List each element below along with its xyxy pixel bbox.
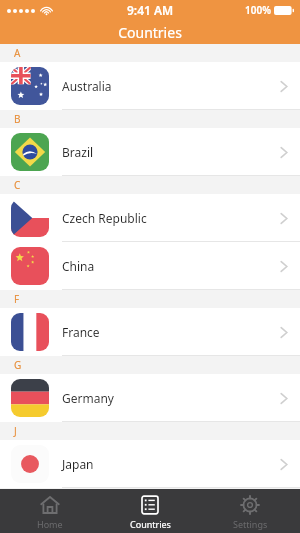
staticText: Brazil: [62, 144, 280, 160]
staticText: J: [14, 424, 17, 438]
staticText: Countries: [118, 23, 182, 42]
other: Countries: [140, 495, 160, 515]
other: Settings: [240, 495, 260, 515]
button[interactable]: France: [0, 308, 300, 356]
staticText: B: [14, 112, 21, 126]
button[interactable]: Countries: [100, 489, 200, 533]
staticText: G: [14, 358, 22, 372]
button[interactable]: Home: [0, 489, 100, 533]
button[interactable]: Australia: [0, 62, 300, 110]
staticText: F: [14, 292, 20, 306]
button[interactable]: Settings: [200, 489, 300, 533]
staticText: Settings: [233, 518, 268, 530]
staticText: 9:41 AM: [127, 2, 174, 18]
staticText: Japan: [62, 456, 280, 472]
staticText: China: [62, 258, 280, 274]
button[interactable]: Czech Republic: [0, 194, 300, 242]
other: Home: [40, 495, 60, 515]
staticText: Czech Republic: [62, 210, 280, 226]
staticText: C: [14, 178, 21, 192]
staticText: 100%: [245, 3, 271, 17]
staticText: A: [14, 46, 21, 60]
button[interactable]: Germany: [0, 374, 300, 422]
staticText: Germany: [62, 390, 280, 406]
button[interactable]: Japan: [0, 440, 300, 488]
staticText: Australia: [62, 78, 280, 94]
staticText: France: [62, 324, 280, 340]
button[interactable]: Brazil: [0, 128, 300, 176]
button[interactable]: China: [0, 242, 300, 290]
staticText: Countries: [130, 518, 171, 530]
staticText: Home: [37, 518, 63, 530]
